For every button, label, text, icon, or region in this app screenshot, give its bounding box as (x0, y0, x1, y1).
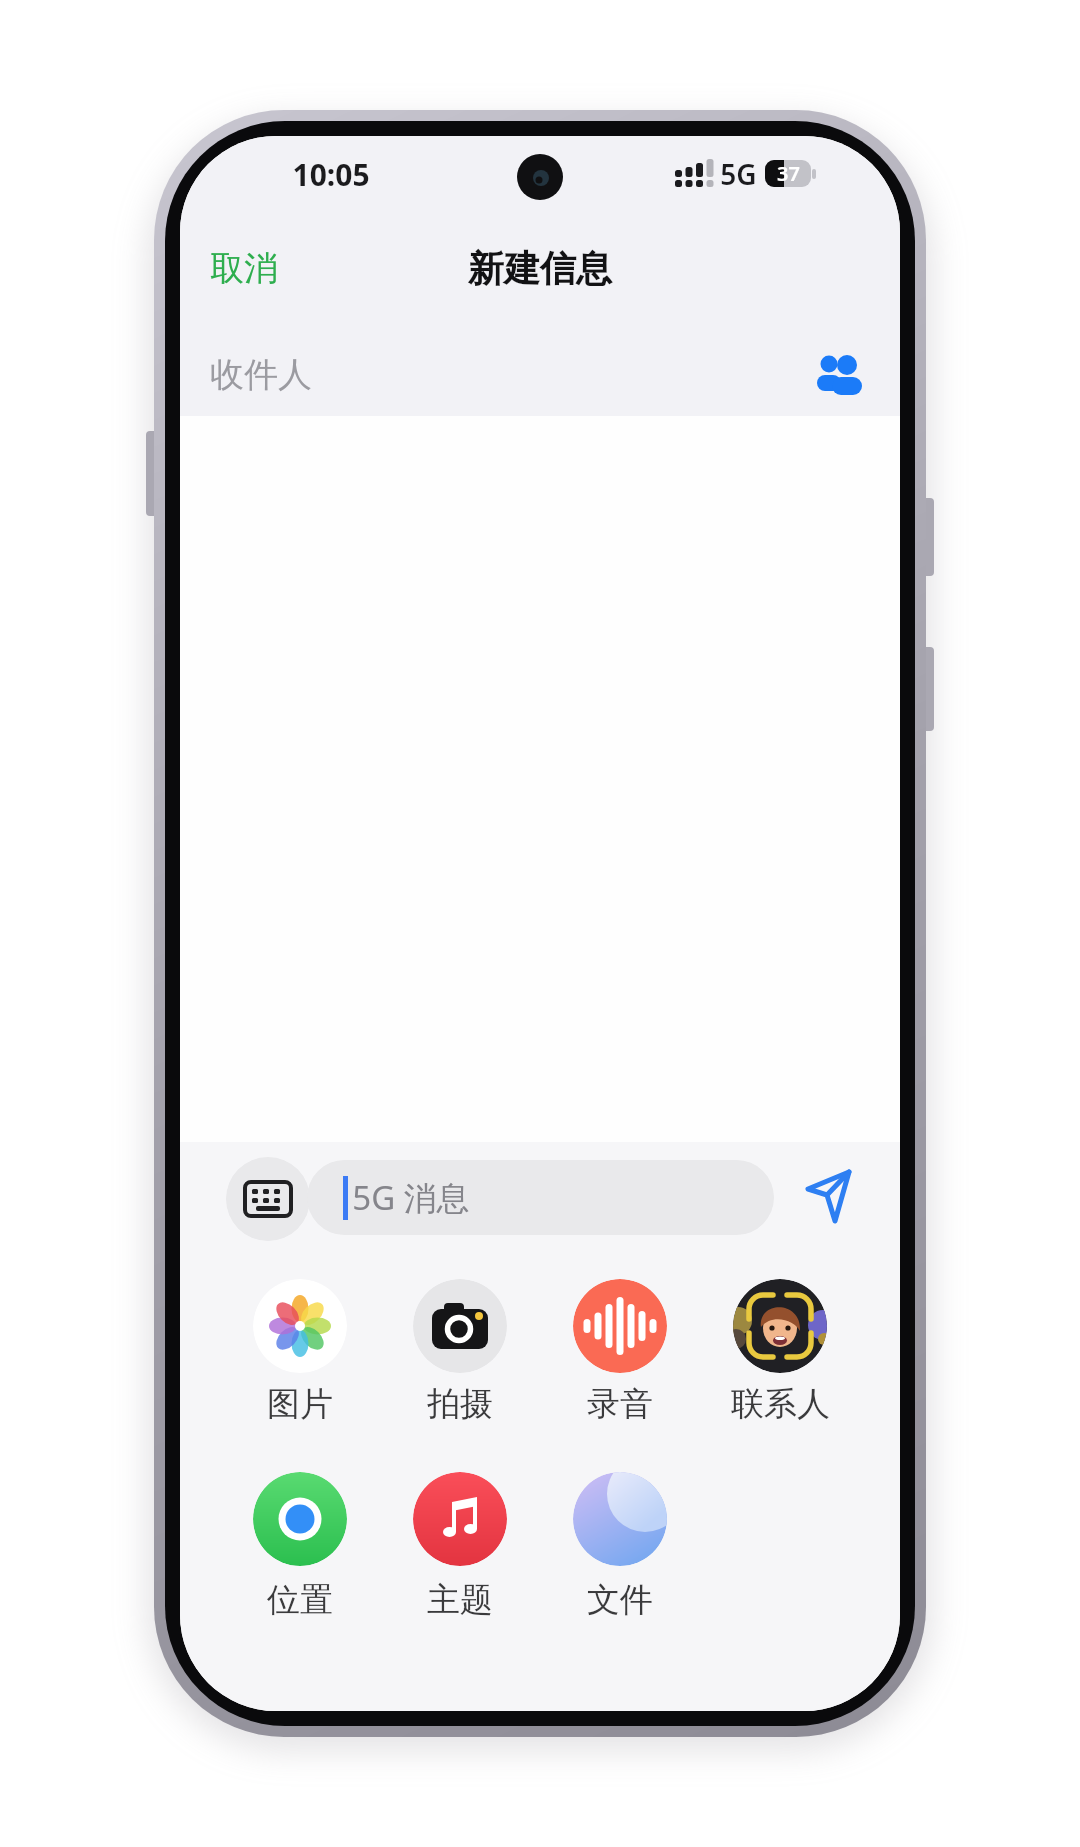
button[interactable] (573, 1472, 667, 1566)
staticText: 文件 (587, 1579, 653, 1621)
button[interactable]: 取消 (210, 240, 300, 296)
staticText: 拍摄 (427, 1383, 493, 1425)
staticText: 收件人 (210, 353, 312, 396)
button[interactable]: 5G 消息 (307, 1160, 774, 1235)
staticText: 图片 (267, 1383, 333, 1425)
staticText: 位置 (267, 1579, 333, 1621)
staticText: 主题 (427, 1579, 493, 1621)
button[interactable] (733, 1279, 827, 1373)
staticText: 新建信息 (468, 246, 612, 291)
button[interactable] (253, 1279, 347, 1373)
button[interactable] (413, 1472, 507, 1566)
staticText: 5G (720, 155, 757, 193)
button[interactable] (815, 353, 863, 395)
button[interactable] (226, 1157, 310, 1241)
staticText: 取消 (210, 247, 278, 290)
staticText: 联系人 (731, 1383, 830, 1425)
button[interactable] (806, 1170, 852, 1224)
staticText: 5G 消息 (352, 1175, 470, 1220)
staticText: 录音 (587, 1383, 653, 1425)
staticText: 37 (777, 160, 800, 187)
button[interactable] (573, 1279, 667, 1373)
button[interactable] (253, 1472, 347, 1566)
button[interactable] (413, 1279, 507, 1373)
staticText: 10:05 (292, 154, 370, 195)
button[interactable]: 收件人 (210, 332, 870, 416)
